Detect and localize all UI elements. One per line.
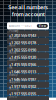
- button[interactable]: Work: [7, 45, 49, 51]
- button[interactable]: Direct: [7, 96, 49, 100]
- button[interactable]: Fax: [7, 67, 49, 73]
- button[interactable]: Support: [7, 81, 49, 88]
- button[interactable]: Primary: [7, 30, 49, 37]
- staticText: +1 646 555 0187: [9, 76, 36, 82]
- staticText: +1 202 555 0190: [9, 47, 36, 52]
- staticText: Billing: [9, 87, 19, 91]
- staticText: +1 646 555 0113: [9, 69, 36, 74]
- button[interactable]: Backup: [7, 74, 49, 80]
- staticText: Backup: [9, 73, 18, 76]
- staticText: +1 415 555 0166: [9, 62, 36, 67]
- staticText: Direct: [9, 95, 17, 98]
- staticText: Other: [9, 58, 17, 62]
- staticText: +1 202 555 0143: [9, 33, 36, 38]
- button[interactable]: Other: [7, 60, 49, 66]
- staticText: Primary: [9, 29, 18, 33]
- staticText: +1 202 555 0178: [9, 40, 36, 45]
- button[interactable]: Mobile: [7, 38, 49, 44]
- button[interactable]: Account ····4821: [7, 22, 49, 29]
- staticText: +1 917 555 0155: [9, 91, 36, 96]
- staticText: Home: [9, 51, 17, 54]
- staticText: Support: [9, 80, 20, 84]
- staticText: +1 415 555 0120: [9, 54, 36, 60]
- staticText: +1 917 555 0102: [9, 84, 36, 89]
- button[interactable]: Billing: [7, 89, 49, 95]
- staticText: Account ····4821: [9, 24, 33, 28]
- staticText: Work: [9, 44, 15, 47]
- staticText: Mobile: [9, 36, 19, 40]
- staticText: View: [39, 24, 46, 28]
- staticText: Fax: [9, 66, 12, 69]
- staticText: See all numbers from account: [8, 4, 48, 18]
- button[interactable]: Home: [7, 52, 49, 59]
